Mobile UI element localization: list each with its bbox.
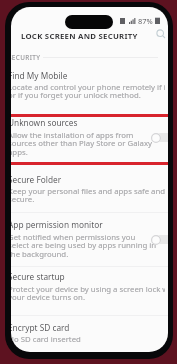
staticText: 87% (138, 16, 153, 26)
staticText: Get notified when permissions you (11, 232, 136, 243)
staticText: Keep your personal files and apps safe a… (11, 186, 165, 197)
staticText: Allow the installation of apps from (11, 130, 134, 141)
staticText: Locate and control your phone remotely i… (11, 82, 165, 93)
staticText: or if you forget your unlock method. (11, 90, 141, 101)
staticText: apps. (11, 147, 28, 158)
staticText: LOCK SCREEN AND SECURITY (21, 31, 138, 42)
staticText: Encrypt SD card (11, 322, 70, 333)
staticText: No SD card inserted (11, 334, 81, 345)
staticText: the background. (11, 249, 69, 260)
button[interactable]: Toggle Unknown sources (151, 131, 168, 144)
staticText: secure. (11, 194, 35, 205)
button[interactable] (11, 213, 168, 263)
button[interactable]: Toggle App permission monitor (151, 233, 168, 246)
staticText: Find My Mobile (11, 70, 68, 81)
button[interactable] (11, 316, 168, 352)
staticText: Unknown sources (11, 117, 78, 128)
staticText: Secure Folder (11, 174, 62, 185)
button[interactable] (11, 63, 168, 107)
staticText: Secure startup (11, 271, 65, 282)
button[interactable] (11, 111, 168, 162)
button[interactable]: Search (154, 27, 168, 41)
button[interactable] (11, 267, 168, 311)
staticText: App permission monitor (11, 219, 103, 230)
button[interactable] (11, 167, 168, 207)
staticText: Protect your device by using a screen lo… (11, 284, 165, 295)
staticText: sources other than Play Store or Galaxy (11, 138, 152, 149)
staticText: SECURITY (11, 53, 41, 62)
staticText: select are being used by apps running in (11, 240, 157, 251)
staticText: your device turns on. (11, 292, 85, 303)
